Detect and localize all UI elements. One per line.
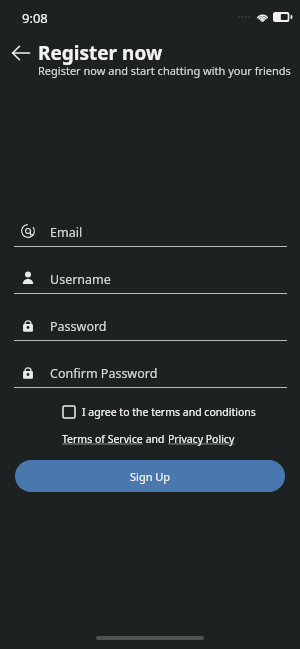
button[interactable]: Username bbox=[0, 261, 300, 308]
staticText: Register now bbox=[38, 40, 163, 66]
staticText: I agree to the terms and conditions bbox=[82, 405, 256, 419]
button[interactable]: Password bbox=[0, 308, 300, 355]
staticText: Password bbox=[50, 318, 107, 335]
staticText: Sign Up bbox=[130, 469, 171, 484]
staticText: Register now and start chatting with you… bbox=[38, 63, 291, 78]
staticText: Terms of Service bbox=[62, 432, 143, 446]
staticText: 9:08 bbox=[22, 9, 48, 27]
staticText: Privacy Policy bbox=[168, 432, 235, 446]
staticText: Username bbox=[50, 271, 111, 288]
staticText: Email bbox=[50, 224, 83, 241]
button[interactable]: Privacy Policy bbox=[168, 432, 235, 446]
button[interactable]: Sign Up bbox=[15, 460, 285, 492]
staticText: Confirm Password bbox=[50, 365, 158, 382]
button[interactable]: I agree to the terms and conditions bbox=[62, 405, 256, 419]
button[interactable]: Email bbox=[0, 214, 300, 261]
button[interactable]: Confirm Password bbox=[0, 355, 300, 402]
button[interactable]: Back bbox=[8, 40, 34, 66]
staticText: and bbox=[143, 432, 168, 446]
button[interactable]: Terms of Service bbox=[62, 432, 143, 446]
